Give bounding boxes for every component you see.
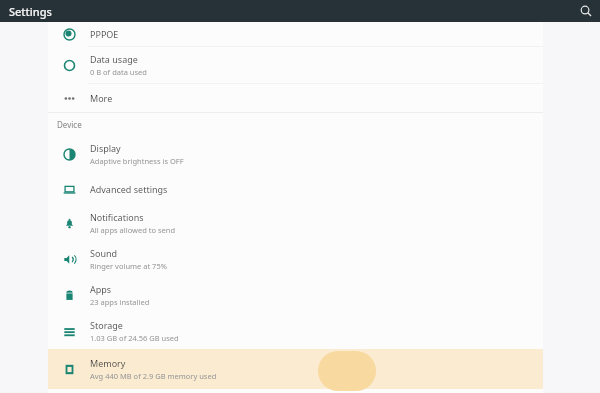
- staticText: Device: [57, 119, 82, 130]
- button[interactable]: Data usage: [48, 47, 543, 83]
- button[interactable]: More: [48, 84, 543, 112]
- staticText: 0 B of data used: [90, 67, 147, 77]
- staticText: 23 apps installed: [90, 297, 150, 307]
- button[interactable]: Display: [48, 135, 543, 173]
- button[interactable]: PPPOE: [48, 22, 543, 46]
- staticText: Data usage: [90, 53, 138, 65]
- button[interactable]: Storage: [48, 313, 543, 349]
- staticText: More: [90, 92, 113, 104]
- staticText: Storage: [90, 319, 123, 331]
- staticText: Sound: [90, 247, 118, 259]
- button[interactable]: Notifications: [48, 205, 543, 241]
- staticText: Display: [90, 142, 121, 154]
- button[interactable]: Memory: [48, 349, 543, 389]
- staticText: Apps: [90, 283, 112, 295]
- button[interactable]: Sound: [48, 241, 543, 277]
- button[interactable]: Advanced settings: [48, 173, 543, 205]
- staticText: Ringer volume at 75%: [90, 261, 167, 271]
- button[interactable]: Apps: [48, 277, 543, 313]
- staticText: Memory: [90, 357, 126, 369]
- staticText: Advanced settings: [90, 183, 168, 195]
- staticText: Adaptive brightness is OFF: [90, 156, 184, 166]
- staticText: Avg 440 MB of 2.9 GB memory used: [90, 371, 217, 381]
- staticText: Notifications: [90, 211, 144, 223]
- staticText: 1.03 GB of 24.56 GB used: [90, 333, 179, 343]
- staticText: All apps allowed to send: [90, 225, 176, 235]
- staticText: PPPOE: [90, 28, 119, 40]
- staticText: Settings: [9, 4, 52, 19]
- button[interactable]: Search: [576, 1, 596, 21]
